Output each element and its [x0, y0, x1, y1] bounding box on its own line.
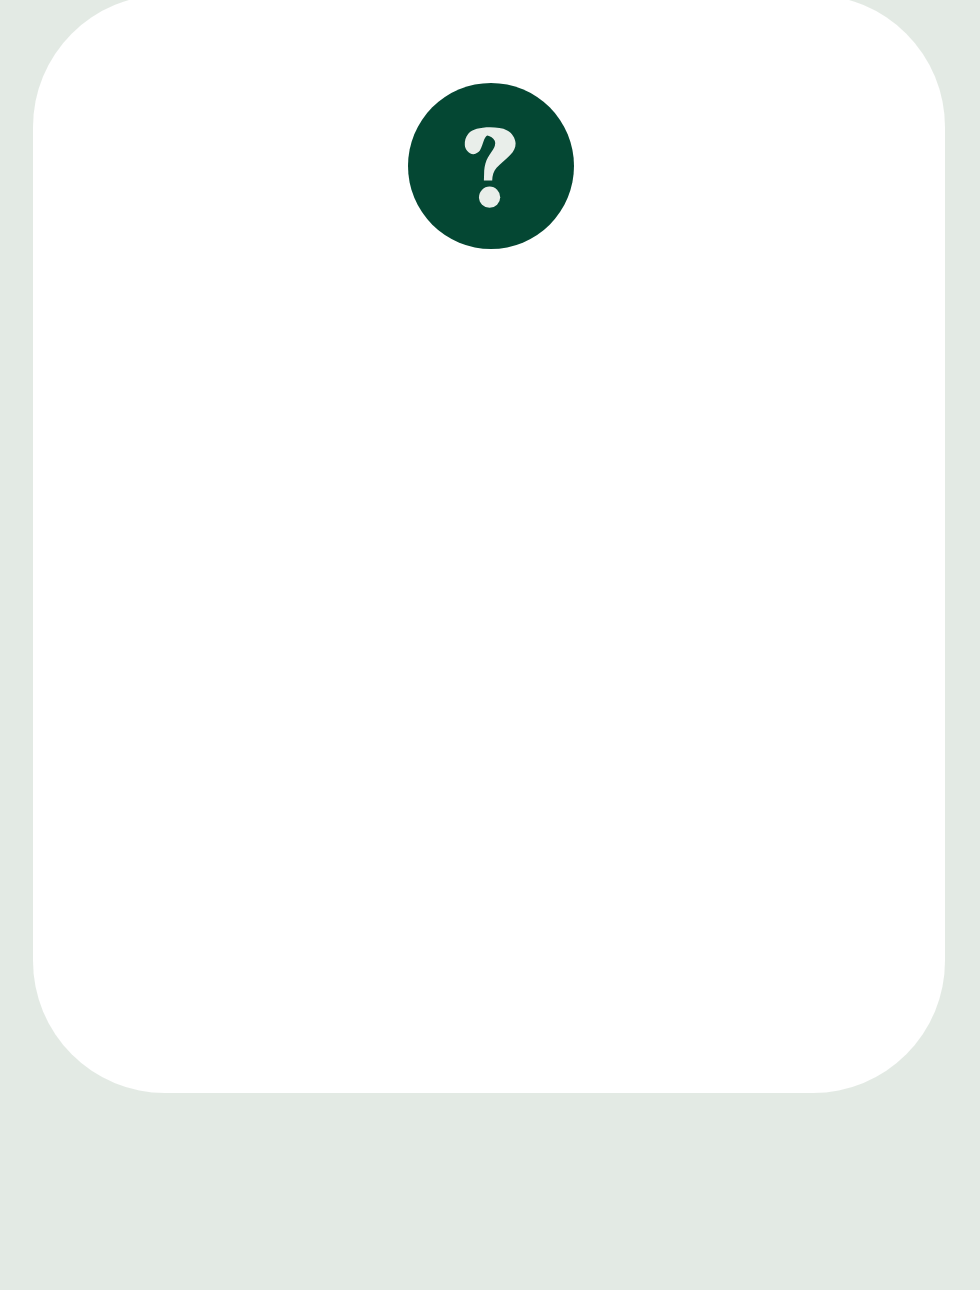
button[interactable]: Help [408, 83, 574, 249]
